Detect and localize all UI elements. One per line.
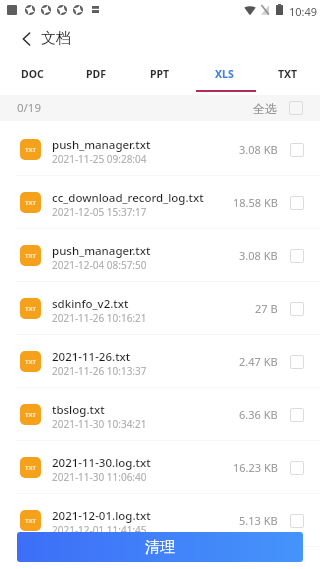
staticText: TXT — [25, 464, 36, 472]
staticText: 27 B — [255, 301, 278, 316]
staticText: 3.08 KB — [239, 142, 278, 157]
button[interactable]: PPT — [128, 57, 192, 95]
staticText: 2021-11-30 10:34:21 — [52, 417, 147, 431]
staticText: TXT — [25, 358, 36, 366]
staticText: TXT — [25, 411, 36, 419]
staticText: PDF — [86, 67, 106, 81]
staticText: 6.36 KB — [239, 407, 278, 422]
staticText: 2021-11-30.log.txt — [52, 455, 151, 471]
staticText: 5.13 KB — [239, 513, 278, 528]
staticText: 16.23 KB — [233, 460, 278, 475]
button[interactable]: 清理 — [17, 532, 303, 562]
button[interactable]: TXT — [0, 388, 320, 441]
staticText: 清理 — [145, 538, 175, 557]
staticText: 2021-12-05 15:37:17 — [52, 205, 147, 219]
button[interactable]: TXT — [0, 229, 320, 282]
staticText: 3.08 KB — [239, 248, 278, 263]
staticText: PPT — [150, 67, 170, 81]
button[interactable]: TXT — [0, 282, 320, 335]
staticText: 10:49 — [289, 4, 318, 19]
staticText: 2021-11-26.txt — [52, 349, 131, 365]
staticText: sdkinfo_v2.txt — [52, 296, 129, 312]
staticText: 全选 — [253, 101, 277, 116]
staticText: 2021-12-04 08:57:50 — [52, 258, 147, 272]
button[interactable]: TXT — [0, 176, 320, 229]
staticText: DOC — [21, 67, 44, 81]
button[interactable]: TXT — [0, 335, 320, 388]
staticText: XLS — [215, 67, 234, 81]
staticText: 0/19 — [17, 100, 42, 116]
button[interactable]: TXT — [0, 441, 320, 494]
button[interactable]: TXT — [0, 494, 320, 547]
staticText: 2021-11-25 09:28:04 — [52, 152, 147, 166]
staticText: 2021-11-26 10:16:21 — [52, 311, 147, 325]
button[interactable]: Back — [10, 20, 42, 57]
staticText: TXT — [25, 199, 36, 207]
button[interactable]: TXT — [0, 123, 320, 176]
staticText: 18.58 KB — [233, 195, 278, 210]
staticText: 2021-11-30 11:06:40 — [52, 470, 147, 484]
staticText: TXT — [25, 146, 36, 154]
button[interactable]: DOC — [0, 57, 64, 95]
staticText: 文档 — [41, 29, 71, 48]
button[interactable]: 全选 — [253, 95, 303, 121]
staticText: tbslog.txt — [52, 402, 105, 418]
staticText: 2.47 KB — [239, 354, 278, 369]
staticText: push_manager.txt — [52, 243, 151, 259]
staticText: TXT — [25, 252, 36, 260]
staticText: push_manager.txt — [52, 137, 151, 153]
button[interactable]: TXT — [256, 57, 320, 95]
staticText: 2021-12-01 11:41:45 — [52, 523, 147, 537]
staticText: 2021-11-26 10:13:37 — [52, 364, 147, 378]
staticText: TXT — [278, 67, 298, 81]
button[interactable]: PDF — [64, 57, 128, 95]
staticText: 2021-12-01.log.txt — [52, 508, 151, 524]
button[interactable]: XLS — [192, 57, 256, 95]
staticText: TXT — [25, 305, 36, 313]
staticText: TXT — [25, 517, 36, 525]
staticText: cc_download_record_log.txt — [52, 190, 204, 206]
